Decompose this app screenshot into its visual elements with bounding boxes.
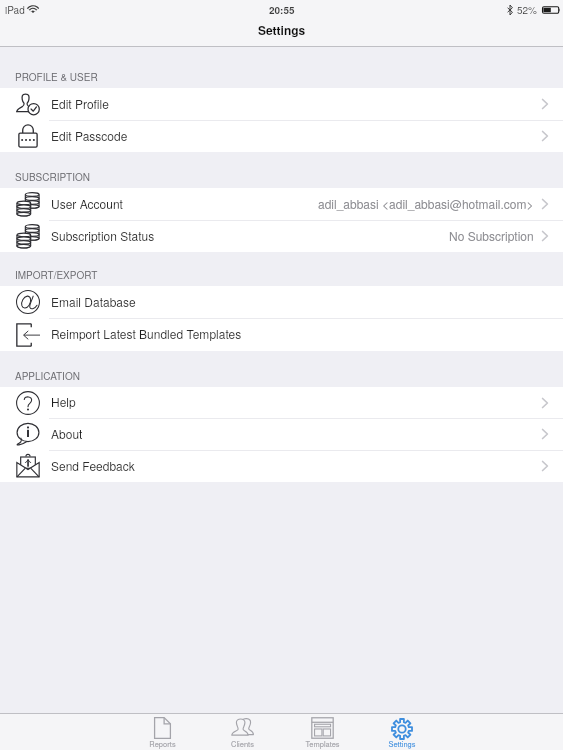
staticText: Reimport Latest Bundled Templates xyxy=(51,325,242,342)
staticText: Reports xyxy=(149,738,176,749)
staticText: User Account xyxy=(51,195,123,212)
button[interactable]: Help xyxy=(0,387,563,418)
button[interactable]: User Account xyxy=(0,188,563,220)
staticText: Subscription Status xyxy=(51,227,155,244)
button[interactable]: Settings tab xyxy=(362,714,442,750)
button[interactable]: Templates tab xyxy=(282,714,362,750)
button[interactable]: Send Feedback xyxy=(0,450,563,482)
staticText: Edit Passcode xyxy=(51,127,128,144)
button[interactable]: Subscription Status xyxy=(0,220,563,252)
staticText: No Subscription xyxy=(449,227,534,244)
staticText: 20:55 xyxy=(269,3,295,17)
staticText: APPLICATION xyxy=(15,369,80,383)
staticText: adil_abbasi <adil_abbasi@hotmail.com> xyxy=(318,195,534,212)
staticText: iPad xyxy=(5,3,25,17)
staticText: 52% xyxy=(517,3,538,17)
staticText: Clients xyxy=(231,738,254,749)
staticText: Templates xyxy=(305,738,340,749)
button[interactable]: About xyxy=(0,418,563,450)
staticText: PROFILE & USER xyxy=(15,70,98,84)
staticText: Settings xyxy=(388,738,416,749)
button[interactable]: Reimport Latest Bundled Templates xyxy=(0,318,563,351)
button[interactable]: Edit Passcode xyxy=(0,120,563,152)
staticText: IMPORT/EXPORT xyxy=(15,268,98,282)
staticText: About xyxy=(51,425,83,442)
button[interactable]: Email Database xyxy=(0,286,563,318)
button[interactable]: Reports tab xyxy=(122,714,202,750)
staticText: Settings xyxy=(258,21,306,38)
staticText: Edit Profile xyxy=(51,95,109,112)
staticText: Send Feedback xyxy=(51,457,135,474)
button[interactable]: Edit Profile xyxy=(0,88,563,120)
button[interactable]: Clients tab xyxy=(202,714,282,750)
staticText: SUBSCRIPTION xyxy=(15,170,91,184)
staticText: Help xyxy=(51,393,76,410)
staticText: Email Database xyxy=(51,293,136,310)
